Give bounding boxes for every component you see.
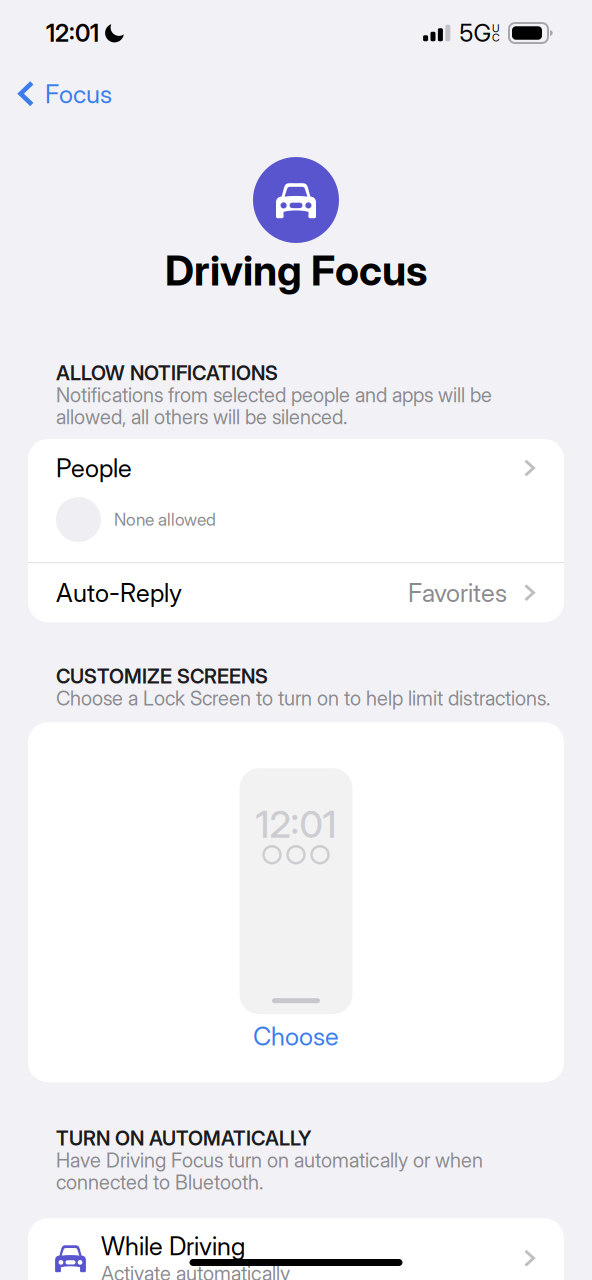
staticText: TURN ON AUTOMATICALLY bbox=[56, 1126, 311, 1150]
staticText: People bbox=[56, 453, 132, 483]
button[interactable]: Auto-Reply bbox=[28, 563, 564, 622]
staticText: 12:01 bbox=[255, 802, 336, 847]
button[interactable]: Focus bbox=[0, 66, 126, 122]
staticText: 5G bbox=[459, 18, 491, 47]
staticText: allowed, all others will be silenced. bbox=[56, 405, 347, 429]
staticText: 12:01 bbox=[46, 18, 99, 47]
button[interactable]: While Driving bbox=[28, 1218, 564, 1280]
staticText: Activate automatically bbox=[101, 1261, 290, 1280]
staticText: Auto-Reply bbox=[56, 577, 182, 608]
staticText: None allowed bbox=[114, 509, 216, 530]
staticText: CUSTOMIZE SCREENS bbox=[56, 664, 268, 688]
button[interactable]: Choose bbox=[231, 1014, 361, 1058]
staticText: connected to Bluetooth. bbox=[56, 1170, 263, 1194]
staticText: Have Driving Focus turn on automatically… bbox=[56, 1148, 483, 1172]
staticText: Choose a Lock Screen to turn on to help … bbox=[56, 686, 550, 710]
staticText: Notifications from selected people and a… bbox=[56, 383, 492, 407]
staticText: While Driving bbox=[101, 1231, 245, 1261]
staticText: ALLOW NOTIFICATIONS bbox=[56, 361, 278, 385]
staticText: U bbox=[492, 22, 500, 35]
button[interactable]: People bbox=[28, 439, 564, 562]
staticText: Favorites bbox=[408, 577, 507, 608]
staticText: Choose bbox=[253, 1021, 339, 1052]
staticText: Focus bbox=[45, 79, 112, 109]
staticText: Driving Focus bbox=[165, 245, 427, 295]
staticText: C bbox=[492, 31, 500, 44]
